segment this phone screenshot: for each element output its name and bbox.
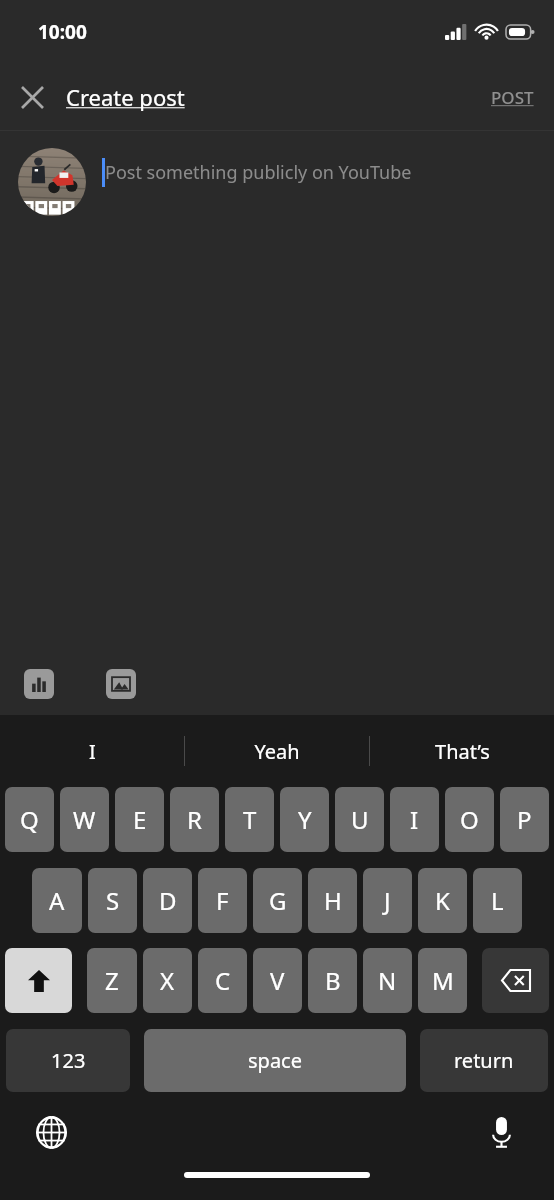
button[interactable]: V	[253, 948, 302, 1013]
button[interactable]: POST	[491, 86, 534, 109]
button[interactable]: Create post	[66, 82, 185, 112]
staticText: U	[351, 803, 369, 836]
button[interactable]: E	[115, 787, 164, 852]
staticText: A	[49, 884, 65, 917]
button[interactable]: H	[308, 868, 357, 933]
button[interactable]: Create poll	[24, 669, 54, 699]
staticText: C	[215, 964, 231, 997]
staticText: K	[435, 884, 450, 917]
staticText: W	[73, 803, 96, 836]
staticText: space	[248, 1047, 302, 1074]
button[interactable]: R	[170, 787, 219, 852]
button[interactable]: P	[500, 787, 549, 852]
staticText: G	[269, 884, 287, 917]
staticText: 10:00	[38, 19, 87, 45]
button[interactable]: A	[32, 868, 82, 933]
staticText: return	[454, 1047, 514, 1074]
button[interactable]: Close	[8, 73, 56, 121]
staticText: Post something publicly on YouTube	[105, 160, 412, 185]
staticText: T	[243, 803, 257, 836]
button[interactable]: Voice input	[478, 1109, 524, 1155]
staticText: That’s	[435, 738, 490, 765]
staticText: Q	[20, 803, 39, 836]
button[interactable]: Post something publicly on YouTube	[102, 158, 538, 187]
staticText: O	[460, 803, 479, 836]
button[interactable]: O	[445, 787, 494, 852]
staticText: N	[378, 964, 397, 997]
button[interactable]: Profile picture	[18, 148, 86, 216]
staticText: D	[159, 884, 177, 917]
button[interactable]: That’s	[370, 715, 554, 787]
button[interactable]: F	[198, 868, 247, 933]
button[interactable]: return	[420, 1029, 548, 1092]
button[interactable]: Backspace	[482, 948, 549, 1013]
button[interactable]: Q	[5, 787, 54, 852]
button[interactable]: I	[390, 787, 439, 852]
staticText: POST	[491, 86, 534, 109]
staticText: Y	[298, 803, 312, 836]
button[interactable]: T	[225, 787, 274, 852]
button[interactable]: S	[88, 868, 137, 933]
button[interactable]: Shift	[5, 948, 72, 1013]
staticText: Z	[105, 964, 119, 997]
button[interactable]: Add image	[106, 669, 136, 699]
button[interactable]: K	[418, 868, 467, 933]
staticText: P	[517, 803, 532, 836]
staticText: R	[187, 803, 202, 836]
staticText: H	[324, 884, 342, 917]
button[interactable]: X	[143, 948, 192, 1013]
staticText: I	[410, 803, 419, 836]
staticText: E	[133, 803, 147, 836]
staticText: Yeah	[254, 738, 300, 765]
staticText: I	[89, 738, 96, 765]
button[interactable]: Z	[87, 948, 137, 1013]
button[interactable]: Y	[280, 787, 329, 852]
button[interactable]: W	[60, 787, 109, 852]
button[interactable]: U	[335, 787, 384, 852]
staticText: M	[432, 964, 454, 997]
staticText: S	[106, 884, 120, 917]
button[interactable]: G	[253, 868, 302, 933]
button[interactable]: L	[473, 868, 522, 933]
button[interactable]: N	[363, 948, 412, 1013]
staticText: J	[384, 884, 391, 917]
button[interactable]: space	[144, 1029, 406, 1092]
button[interactable]: B	[308, 948, 357, 1013]
button[interactable]: D	[143, 868, 192, 933]
staticText: V	[270, 964, 285, 997]
button[interactable]: M	[418, 948, 467, 1013]
button[interactable]: C	[198, 948, 247, 1013]
staticText: 123	[51, 1047, 86, 1074]
button[interactable]: J	[363, 868, 412, 933]
button[interactable]: Yeah	[185, 715, 369, 787]
button[interactable]: 123	[6, 1029, 130, 1092]
button[interactable]: I	[0, 715, 184, 787]
staticText: X	[160, 964, 175, 997]
button[interactable]: Change keyboard language	[28, 1109, 74, 1155]
staticText: B	[325, 964, 341, 997]
staticText: L	[491, 884, 504, 917]
staticText: F	[216, 884, 229, 917]
